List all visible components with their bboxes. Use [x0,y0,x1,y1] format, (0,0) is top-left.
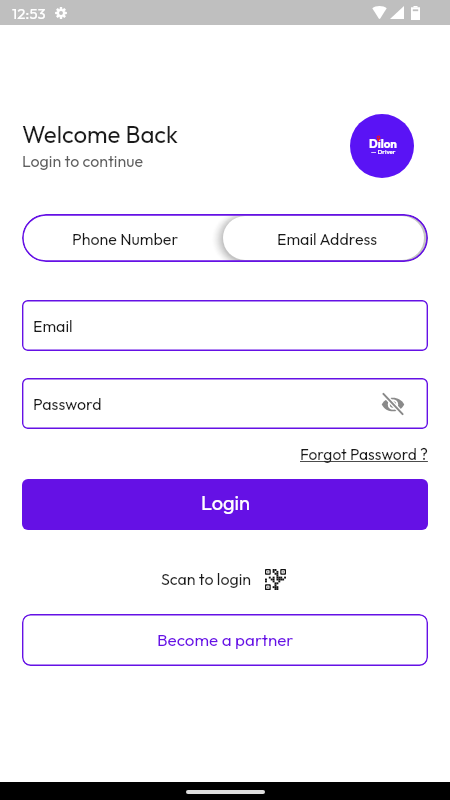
button[interactable]: Email Address [223,216,424,260]
staticText: Login [201,490,250,515]
staticText: Email [33,316,73,336]
staticText: 12:53 [12,4,46,23]
staticText: Dilon [369,136,397,150]
button[interactable]: Show password [377,388,409,420]
staticText: Phone Number [72,229,179,249]
button[interactable]: Password [22,378,428,429]
staticText: Become a partner [157,629,294,650]
button[interactable]: Become a partner [22,614,428,666]
staticText: Scan to login [161,569,252,589]
staticText: Password [33,394,102,414]
staticText: Login to continue [22,151,144,171]
button[interactable]: Phone Number [22,214,225,262]
button[interactable]: Email [22,300,428,351]
button[interactable]: Forgot Password ? [300,444,428,464]
button[interactable]: Scan to login [161,568,286,589]
button[interactable]: Login [22,479,428,530]
staticText: — Driver [371,148,396,156]
staticText: Welcome Back [22,119,179,149]
staticText: Email Address [277,229,378,249]
